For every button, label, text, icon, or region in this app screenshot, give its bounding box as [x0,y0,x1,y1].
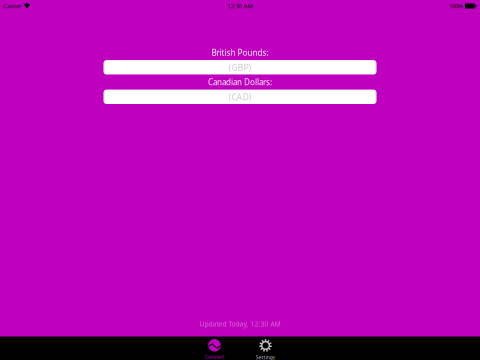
button[interactable]: Convert [189,336,240,360]
staticText: (CAD) [228,91,251,103]
staticText: Carrier [3,2,21,10]
button[interactable]: (CAD) [103,90,376,104]
staticText: Convert [205,353,224,360]
button[interactable]: (GBP) [103,60,376,74]
staticText: Updated Today, 12:30 AM [199,319,280,328]
staticText: Canadian Dollars: [208,77,272,88]
staticText: British Pounds: [211,47,268,58]
staticText: Settings [255,353,275,360]
button[interactable]: Settings [240,336,291,360]
staticText: 12:30 AM [227,2,252,10]
staticText: 100% [449,2,463,10]
staticText: (GBP) [228,61,251,73]
